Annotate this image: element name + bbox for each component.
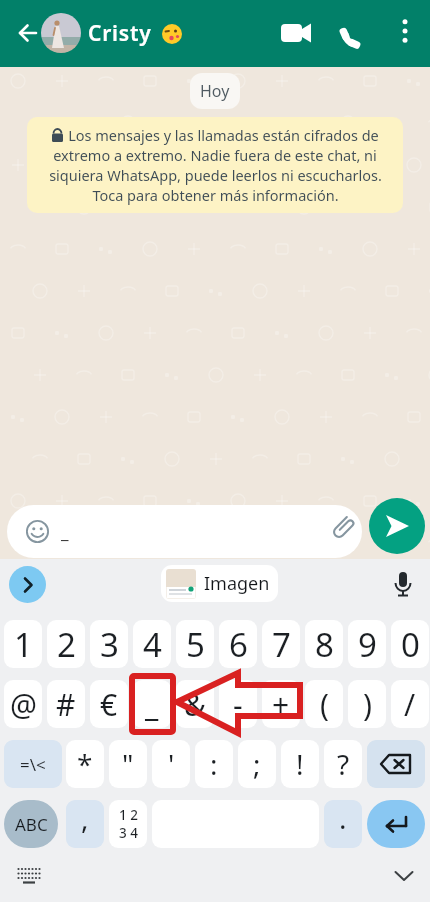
button[interactable]: € <box>90 680 128 728</box>
staticText: 9 <box>358 622 377 667</box>
button[interactable] <box>335 13 375 53</box>
staticText: Cristy <box>88 19 152 48</box>
staticText: # <box>56 684 76 725</box>
staticText: + <box>272 684 290 725</box>
button[interactable]: 9 <box>348 620 386 668</box>
button[interactable]: Imagen <box>161 565 278 602</box>
button[interactable]: 8 <box>305 620 343 668</box>
staticText: ' <box>168 745 175 783</box>
button[interactable]: ? <box>324 740 362 788</box>
staticText: ? <box>337 745 350 783</box>
staticText: siquiera WhatsApp, puede leerlos ni escu… <box>49 165 382 185</box>
staticText: extremo a extremo. Nadie fuera de este c… <box>53 145 377 165</box>
staticText: . <box>339 800 347 837</box>
staticText: 4 <box>143 622 162 667</box>
staticText: 7 <box>272 622 291 667</box>
staticText: @ <box>10 684 37 725</box>
staticText: € <box>100 684 118 725</box>
button[interactable]: Los mensajes y las llamadas están cifrad… <box>27 117 403 213</box>
button[interactable] <box>387 13 423 49</box>
staticText: " <box>122 745 134 783</box>
staticText: 3 <box>100 622 119 667</box>
staticText: 5 <box>186 622 205 667</box>
button[interactable] <box>386 567 420 601</box>
staticText: ; <box>253 745 261 783</box>
button[interactable]: 1 <box>4 620 42 668</box>
staticText: _ <box>61 521 69 544</box>
staticText: 0 <box>401 622 420 667</box>
staticText: ! <box>296 745 304 783</box>
button[interactable] <box>367 800 425 848</box>
button[interactable] <box>369 498 425 554</box>
staticText: 1 <box>14 622 33 667</box>
staticText: Toca para obtener más información. <box>92 185 339 205</box>
button[interactable]: . <box>324 800 362 848</box>
button[interactable] <box>41 13 81 53</box>
button[interactable]: : <box>195 740 233 788</box>
staticText: 2 <box>57 622 76 667</box>
staticText: , <box>81 800 89 837</box>
staticText: =\< <box>20 753 46 776</box>
staticText: _ <box>145 684 159 725</box>
button[interactable]: ) <box>348 680 386 728</box>
button[interactable]: 5 <box>176 620 214 668</box>
button[interactable]: _ <box>133 680 171 728</box>
staticText: 8 <box>315 622 334 667</box>
button[interactable]: =\< <box>4 740 62 788</box>
button[interactable]: ; <box>238 740 276 788</box>
button[interactable]: 7 <box>262 620 300 668</box>
button[interactable] <box>8 13 48 53</box>
button[interactable]: 6 <box>219 620 257 668</box>
button[interactable]: & <box>176 680 214 728</box>
button[interactable]: # <box>47 680 85 728</box>
button[interactable]: @ <box>4 680 42 728</box>
staticText: Los mensajes y las llamadas están cifrad… <box>68 125 379 145</box>
button[interactable] <box>10 859 48 893</box>
button[interactable]: Hoy <box>190 73 240 109</box>
button[interactable]: 4 <box>133 620 171 668</box>
staticText: ) <box>363 684 372 725</box>
staticText: 6 <box>229 622 248 667</box>
staticText: 3 4 <box>119 824 138 842</box>
button[interactable]: 1 2 <box>109 800 147 848</box>
button[interactable]: ! <box>281 740 319 788</box>
button[interactable]: * <box>66 740 104 788</box>
button[interactable]: 2 <box>47 620 85 668</box>
staticText: ABC <box>15 813 48 836</box>
button[interactable]: - <box>219 680 257 728</box>
button[interactable]: ABC <box>4 800 58 848</box>
button[interactable] <box>276 13 316 53</box>
staticText: / <box>404 684 416 725</box>
staticText: Hoy <box>200 80 230 102</box>
button[interactable]: ( <box>305 680 343 728</box>
staticText: - <box>233 684 243 725</box>
button[interactable]: ' <box>152 740 190 788</box>
button[interactable]: , <box>66 800 104 848</box>
staticText: * <box>77 745 93 783</box>
button[interactable] <box>367 740 425 788</box>
staticText: 1 2 <box>119 806 138 824</box>
button[interactable]: 3 <box>90 620 128 668</box>
button[interactable]: 0 <box>391 620 429 668</box>
staticText: : <box>210 745 218 783</box>
staticText: Imagen <box>204 571 270 596</box>
staticText: ( <box>320 684 329 725</box>
button[interactable]: / <box>391 680 429 728</box>
button[interactable]: " <box>109 740 147 788</box>
button[interactable]: _ <box>7 505 362 558</box>
button[interactable] <box>9 566 46 603</box>
button[interactable]: + <box>262 680 300 728</box>
button[interactable] <box>386 859 422 893</box>
staticText: & <box>184 684 206 725</box>
